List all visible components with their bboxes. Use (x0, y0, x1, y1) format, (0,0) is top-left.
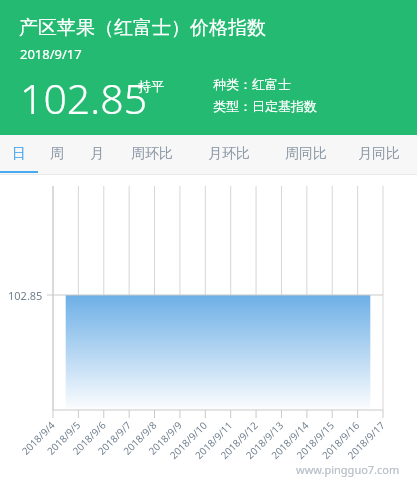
staticText: www.pingguo7.com (296, 462, 400, 477)
staticText: 种类：红富士 (213, 76, 291, 92)
button[interactable]: 月 (78, 135, 116, 173)
staticText: 102.85 (20, 70, 148, 126)
staticText: 产区苹果（红富士）价格指数 (19, 16, 266, 40)
staticText: 周同比 (285, 145, 327, 163)
staticText: 月同比 (358, 145, 400, 163)
staticText: 月环比 (208, 145, 250, 163)
staticText: 周 (50, 145, 64, 163)
button[interactable]: 月环比 (198, 135, 260, 173)
button[interactable]: 周环比 (121, 135, 183, 173)
staticText: 日 (12, 145, 26, 163)
staticText: 类型：日定基指数 (213, 98, 317, 114)
button[interactable]: 周同比 (275, 135, 337, 173)
button[interactable]: 周 (38, 135, 76, 173)
staticText: 持平 (138, 78, 164, 94)
button[interactable]: 日 (0, 135, 38, 173)
staticText: 周环比 (131, 145, 173, 163)
button[interactable]: 月同比 (348, 135, 410, 173)
staticText: 2018/9/17 (20, 45, 82, 63)
staticText: 月 (90, 145, 104, 163)
